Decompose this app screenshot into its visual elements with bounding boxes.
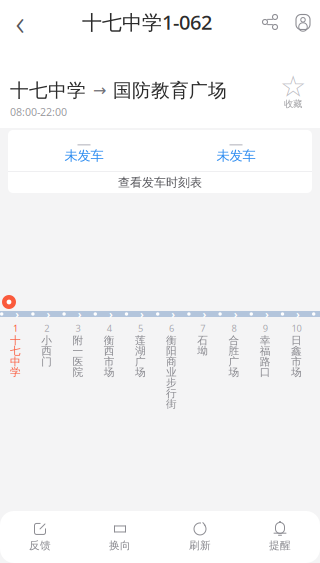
staticText: 湖 [135, 344, 146, 357]
staticText: 查看发车时刻表 [118, 175, 202, 190]
button[interactable]: 10 [281, 322, 312, 379]
staticText: → [93, 81, 106, 99]
button[interactable]: 6 [156, 322, 187, 409]
staticText: 业 [166, 366, 177, 379]
staticText: › [109, 307, 113, 321]
staticText: 08:00-22:00 [10, 105, 67, 119]
staticText: 衡 [166, 334, 177, 347]
staticText: 一 [72, 344, 83, 357]
button[interactable]: 5 [125, 322, 156, 379]
button[interactable]: ☆ [272, 53, 320, 111]
staticText: 行 [166, 387, 177, 400]
staticText: 西 [104, 344, 115, 357]
staticText: 场 [291, 366, 302, 379]
staticText: 鑫 [291, 344, 302, 357]
button[interactable]: Back [0, 0, 40, 44]
staticText: 未发车 [216, 147, 255, 164]
staticText: 广 [135, 355, 146, 368]
staticText: 路 [260, 355, 271, 368]
staticText: 市 [291, 355, 302, 368]
staticText: 十 [10, 334, 21, 347]
staticText: 7 [200, 322, 205, 334]
staticText: 商 [166, 355, 177, 368]
staticText: 胜 [228, 344, 239, 357]
staticText: 国防教育广场 [113, 79, 227, 102]
staticText: 市 [104, 355, 115, 368]
staticText: 学 [10, 366, 21, 379]
staticText: ‹ [15, 0, 24, 45]
button[interactable]: 1 [0, 322, 31, 379]
staticText: 刷新 [189, 539, 211, 552]
staticText: 3 [75, 322, 80, 334]
staticText: 附 [72, 334, 83, 347]
staticText: 场 [135, 366, 146, 379]
staticText: 十七中学 [10, 79, 86, 102]
staticText: › [296, 307, 300, 321]
staticText: › [15, 307, 19, 321]
staticText: › [46, 307, 50, 321]
staticText: ☆ [280, 70, 306, 103]
staticText: 9 [263, 322, 268, 334]
staticText: 收藏 [284, 98, 302, 110]
staticText: 衡 [104, 334, 115, 347]
staticText: 石 [197, 334, 208, 347]
staticText: 小 [41, 334, 52, 347]
staticText: 医 [72, 355, 83, 368]
staticText: 幸 [260, 334, 271, 347]
staticText: 广 [228, 355, 239, 368]
button[interactable]: 3 [62, 322, 94, 379]
staticText: 反馈 [29, 539, 51, 552]
staticText: 西 [41, 344, 52, 357]
staticText: 坳 [197, 344, 208, 357]
staticText: 福 [260, 344, 271, 357]
button[interactable]: 4 [94, 322, 125, 379]
button[interactable]: 反馈 [0, 514, 80, 560]
staticText: 院 [72, 366, 83, 379]
staticText: 七 [10, 344, 21, 357]
button[interactable]: 刷新 [160, 514, 240, 560]
staticText: 口 [260, 366, 271, 379]
staticText: 场 [104, 366, 115, 379]
button[interactable]: 提醒 [240, 514, 320, 560]
staticText: 场 [228, 366, 239, 379]
button[interactable]: 7 [187, 322, 218, 359]
staticText: 提醒 [269, 539, 291, 552]
staticText: 10 [291, 322, 301, 334]
staticText: › [202, 307, 206, 321]
staticText: 合 [228, 334, 239, 347]
staticText: 阳 [166, 344, 177, 357]
button[interactable]: 2 [31, 322, 62, 369]
staticText: › [140, 307, 144, 321]
staticText: 4 [107, 322, 112, 334]
button[interactable]: Account [286, 0, 320, 44]
staticText: 门 [41, 355, 52, 368]
staticText: › [78, 307, 82, 321]
staticText: 十七中学1-062 [82, 9, 212, 35]
staticText: 5 [138, 322, 143, 334]
button[interactable]: 查看发车时刻表 [8, 172, 312, 193]
staticText: 1 [13, 322, 18, 334]
staticText: 8 [231, 322, 236, 334]
button[interactable]: 9 [250, 322, 281, 379]
staticText: › [234, 307, 238, 321]
staticText: 换向 [109, 539, 131, 552]
staticText: 街 [166, 397, 177, 410]
staticText: › [265, 307, 269, 321]
staticText: 日 [291, 334, 302, 347]
staticText: 未发车 [64, 147, 103, 164]
button[interactable]: 8 [218, 322, 250, 379]
staticText: 步 [166, 376, 177, 389]
staticText: 6 [169, 322, 174, 334]
button[interactable]: Share [254, 0, 286, 44]
button[interactable]: 换向 [80, 514, 160, 560]
staticText: 莲 [135, 334, 146, 347]
staticText: 2 [44, 322, 49, 334]
staticText: › [171, 307, 175, 321]
staticText: 中 [10, 355, 21, 368]
